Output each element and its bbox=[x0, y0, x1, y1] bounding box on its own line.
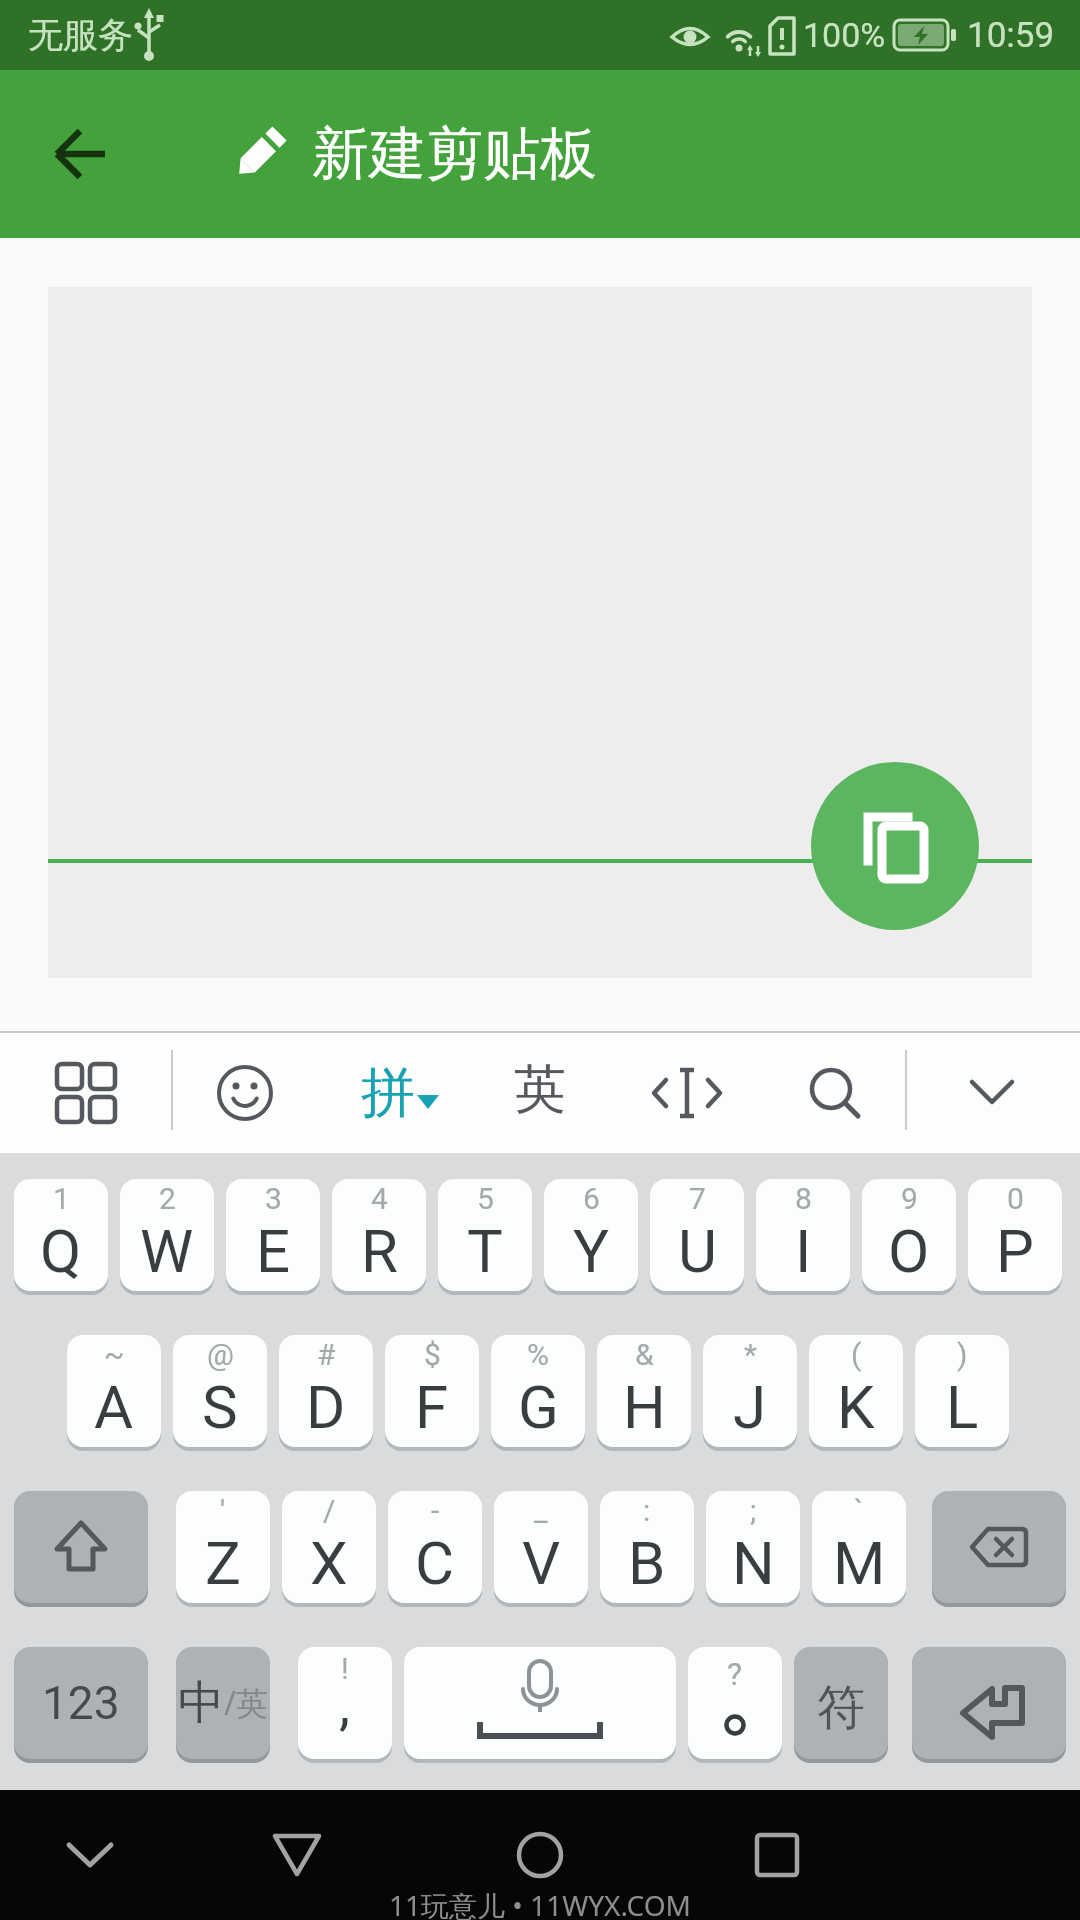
staticText: 6 bbox=[583, 1181, 600, 1216]
staticText: R bbox=[361, 1216, 398, 1286]
button[interactable]: ' bbox=[176, 1491, 270, 1603]
button[interactable]: ! bbox=[298, 1647, 392, 1759]
button[interactable]: & bbox=[597, 1335, 691, 1447]
staticText: ; bbox=[750, 1493, 757, 1528]
button[interactable]: @ bbox=[173, 1335, 267, 1447]
staticText: 0 bbox=[1007, 1181, 1024, 1216]
staticText: 9 bbox=[901, 1181, 918, 1216]
staticText: ! bbox=[341, 1651, 349, 1686]
staticText: * bbox=[744, 1337, 757, 1372]
staticText: ( bbox=[851, 1337, 862, 1372]
button[interactable] bbox=[942, 1043, 1042, 1143]
button[interactable]: / bbox=[282, 1491, 376, 1603]
button[interactable]: ` bbox=[812, 1491, 906, 1603]
button[interactable]: 英 bbox=[490, 1040, 590, 1140]
button[interactable] bbox=[932, 1491, 1066, 1603]
staticText: X bbox=[310, 1528, 348, 1598]
staticText: : bbox=[643, 1493, 651, 1528]
button[interactable]: 符 bbox=[794, 1647, 888, 1759]
staticText: ) bbox=[957, 1337, 968, 1372]
staticText: 8 bbox=[795, 1181, 812, 1216]
button[interactable] bbox=[637, 1043, 737, 1143]
button[interactable] bbox=[785, 1043, 885, 1143]
button[interactable]: 9 bbox=[862, 1179, 956, 1291]
staticText: 2 bbox=[159, 1181, 176, 1216]
button[interactable]: ( bbox=[809, 1335, 903, 1447]
button[interactable]: 3 bbox=[226, 1179, 320, 1291]
staticText: 3 bbox=[265, 1181, 282, 1216]
button[interactable] bbox=[811, 762, 979, 930]
button[interactable] bbox=[14, 1491, 148, 1603]
button[interactable] bbox=[404, 1647, 676, 1759]
staticText: ` bbox=[854, 1493, 864, 1528]
staticText: % bbox=[527, 1337, 549, 1372]
button[interactable] bbox=[36, 1043, 136, 1143]
button[interactable] bbox=[195, 1043, 295, 1143]
button[interactable]: $ bbox=[385, 1335, 479, 1447]
staticText: T bbox=[467, 1216, 503, 1286]
staticText: 5 bbox=[477, 1181, 494, 1216]
staticText: 拼 bbox=[361, 1059, 415, 1127]
staticText: 英 bbox=[514, 1057, 566, 1123]
button[interactable]: ~ bbox=[67, 1335, 161, 1447]
button[interactable]: 8 bbox=[756, 1179, 850, 1291]
staticText: P bbox=[996, 1216, 1034, 1286]
staticText: $ bbox=[424, 1337, 441, 1372]
staticText: 符 bbox=[817, 1678, 865, 1738]
button[interactable]: * bbox=[703, 1335, 797, 1447]
staticText: K bbox=[837, 1372, 875, 1442]
staticText: @ bbox=[207, 1337, 234, 1372]
button[interactable]: 6 bbox=[544, 1179, 638, 1291]
button[interactable]: ) bbox=[915, 1335, 1009, 1447]
staticText: W bbox=[140, 1216, 194, 1286]
staticText: - bbox=[431, 1493, 440, 1528]
button[interactable]: 1 bbox=[14, 1179, 108, 1291]
staticText: _ bbox=[534, 1493, 548, 1528]
staticText: # bbox=[317, 1337, 336, 1372]
button[interactable]: _ bbox=[494, 1491, 588, 1603]
staticText: E bbox=[256, 1216, 291, 1286]
button[interactable]: 123 bbox=[14, 1647, 148, 1759]
button[interactable]: 0 bbox=[968, 1179, 1062, 1291]
staticText: 11玩意儿 • 11WYX.COM bbox=[389, 1886, 691, 1920]
staticText: F bbox=[415, 1372, 449, 1442]
button[interactable]: : bbox=[600, 1491, 694, 1603]
staticText: A bbox=[94, 1372, 134, 1442]
button[interactable]: 中 bbox=[176, 1647, 270, 1759]
staticText: 100% bbox=[803, 15, 886, 55]
button[interactable]: % bbox=[491, 1335, 585, 1447]
staticText: U bbox=[678, 1216, 717, 1286]
staticText: 无服务 bbox=[28, 13, 133, 57]
staticText: 123 bbox=[42, 1676, 120, 1730]
button[interactable] bbox=[40, 1805, 140, 1905]
button[interactable] bbox=[247, 1805, 347, 1905]
staticText: Z bbox=[205, 1528, 241, 1598]
staticText: L bbox=[946, 1372, 979, 1442]
button[interactable] bbox=[25, 98, 137, 210]
staticText: V bbox=[522, 1528, 561, 1598]
staticText: & bbox=[635, 1337, 654, 1372]
staticText: J bbox=[733, 1372, 767, 1442]
button[interactable]: # bbox=[279, 1335, 373, 1447]
button[interactable]: ; bbox=[706, 1491, 800, 1603]
button[interactable]: 7 bbox=[650, 1179, 744, 1291]
button[interactable]: 2 bbox=[120, 1179, 214, 1291]
staticText: 中 bbox=[178, 1674, 224, 1732]
button[interactable]: - bbox=[388, 1491, 482, 1603]
staticText: 新建剪贴板 bbox=[312, 118, 597, 190]
button[interactable]: 拼 bbox=[340, 1043, 460, 1143]
button[interactable] bbox=[912, 1647, 1066, 1759]
staticText: O bbox=[888, 1216, 930, 1286]
staticText: /英 bbox=[224, 1681, 268, 1725]
button[interactable]: 5 bbox=[438, 1179, 532, 1291]
staticText: Q bbox=[40, 1216, 82, 1286]
staticText: 4 bbox=[371, 1181, 388, 1216]
button[interactable]: 4 bbox=[332, 1179, 426, 1291]
button[interactable] bbox=[490, 1805, 590, 1905]
staticText: / bbox=[323, 1493, 336, 1528]
button[interactable] bbox=[727, 1805, 827, 1905]
staticText: N bbox=[732, 1528, 775, 1598]
staticText: C bbox=[415, 1528, 455, 1598]
button[interactable]: ? bbox=[688, 1647, 782, 1759]
staticText: I bbox=[795, 1216, 812, 1286]
